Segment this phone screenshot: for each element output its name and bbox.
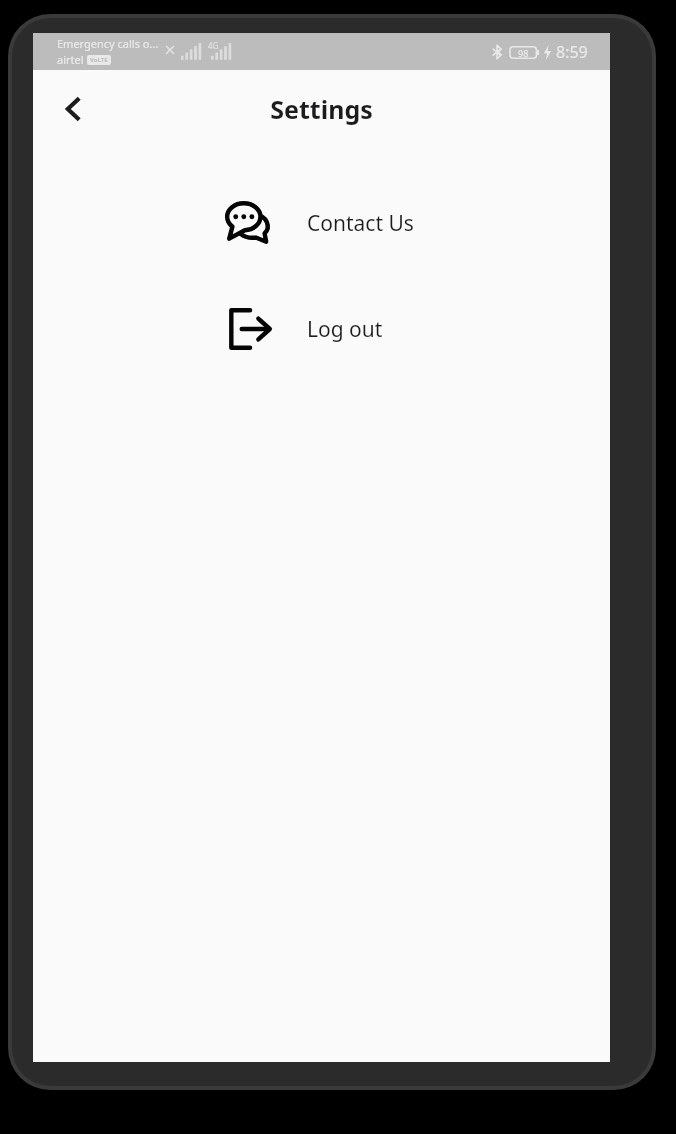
staticText: Settings <box>270 92 373 126</box>
button[interactable]: Back <box>47 83 99 135</box>
staticText: VoLTE <box>90 56 108 64</box>
staticText: Log out <box>307 315 383 344</box>
staticText: 8:59 <box>556 41 588 63</box>
staticText: 4G <box>208 40 219 51</box>
button[interactable]: Log out <box>33 298 610 360</box>
button[interactable]: Contact Us <box>33 192 610 254</box>
staticText: Contact Us <box>307 209 414 238</box>
staticText: 98 <box>518 47 529 59</box>
staticText: Emergency calls o... <box>57 36 159 51</box>
staticText: airtel <box>57 52 84 67</box>
